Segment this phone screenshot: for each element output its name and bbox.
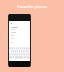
staticText: Favorite places bbox=[0, 4, 64, 9]
button[interactable]: Keyboard bbox=[9, 47, 30, 59]
button[interactable]: Search bbox=[9, 22, 30, 25]
